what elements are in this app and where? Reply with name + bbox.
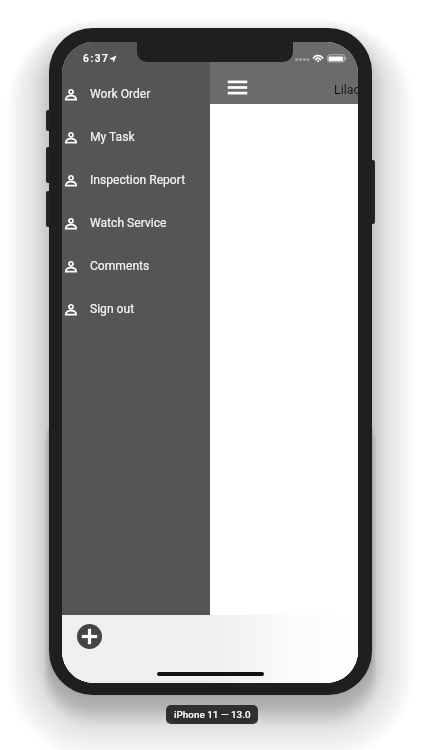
button[interactable]: Comments [62,244,210,287]
staticText: Work Order [90,87,151,101]
staticText: Lilac Inspection [334,82,358,97]
staticText: Watch Service [90,216,167,230]
staticText: iPhone 11 — 13.0 [174,709,251,721]
staticText: Inspection Report [90,173,186,187]
staticText: Sign out [90,302,135,316]
button[interactable]: Watch Service [62,201,210,244]
button[interactable]: Sign out [62,287,210,330]
button[interactable]: Add [77,624,102,649]
staticText: My Task [90,130,135,144]
staticText: 6:37 [83,53,110,65]
button[interactable]: Inspection Report [62,158,210,201]
staticText: Comments [90,259,150,273]
button[interactable]: My Task [62,115,210,158]
button[interactable]: Work Order [62,72,210,115]
button[interactable]: Open navigation menu [222,72,253,103]
